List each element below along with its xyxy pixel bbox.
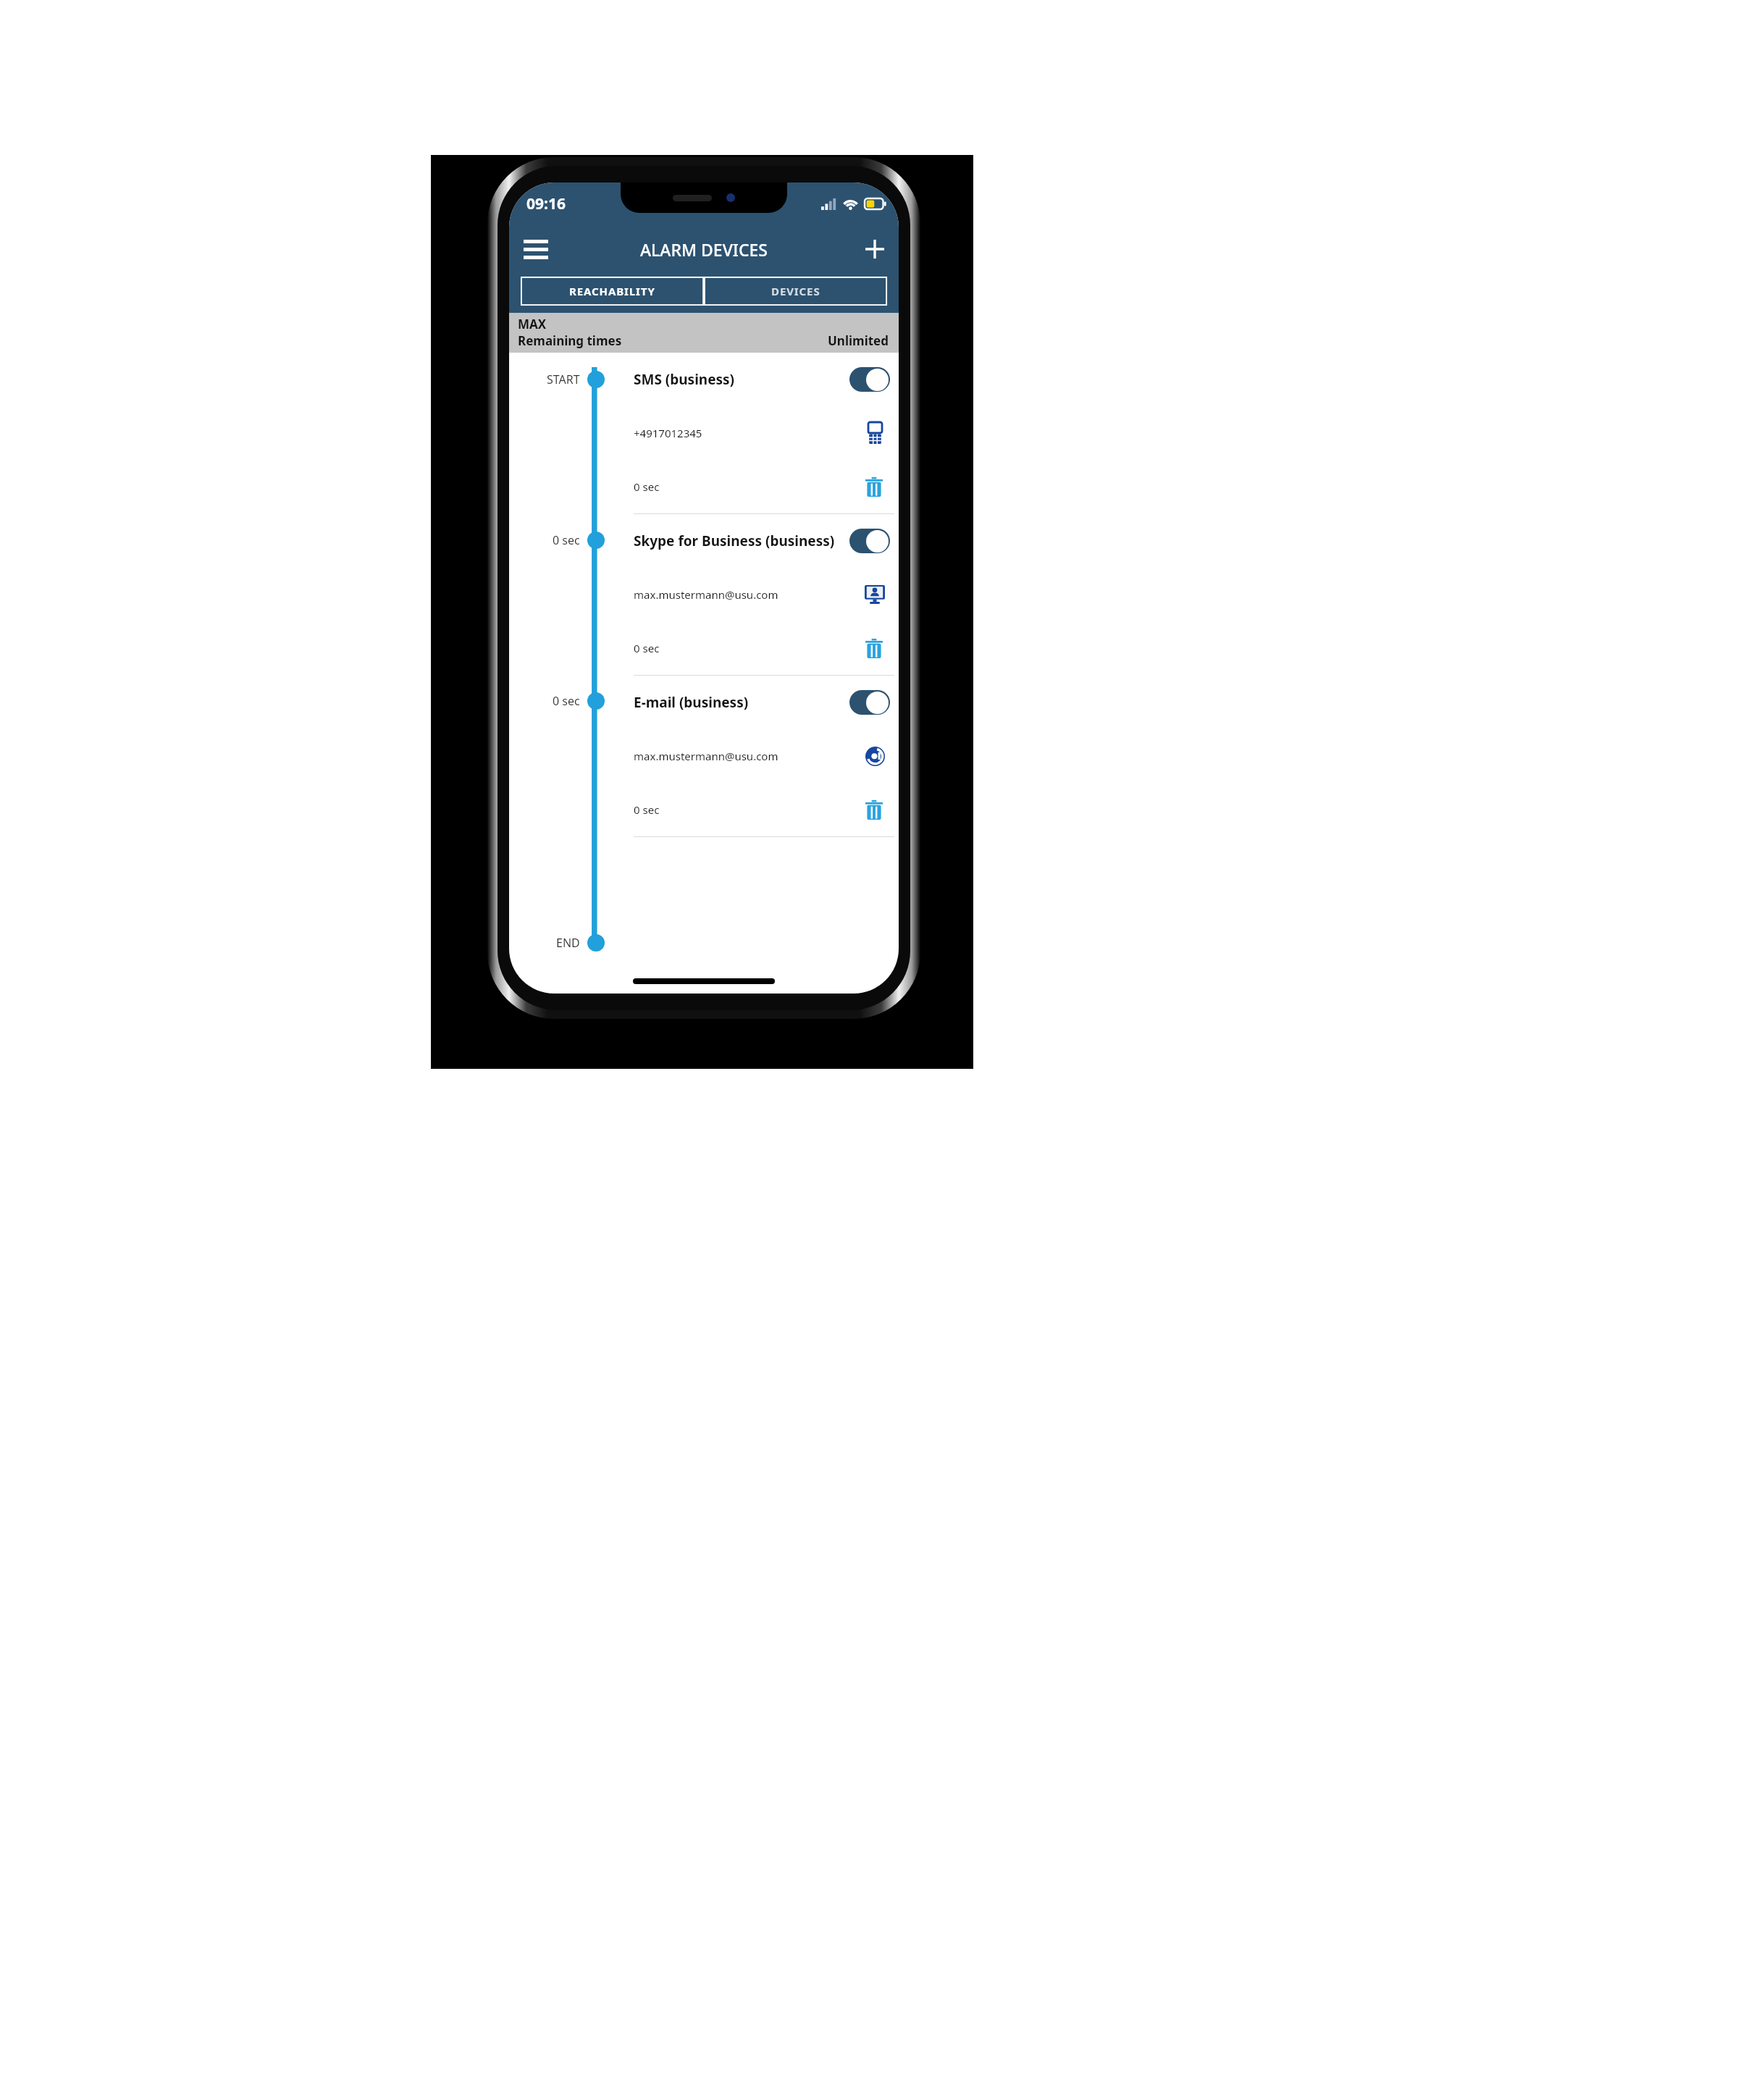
- button[interactable]: Delete: [858, 794, 890, 826]
- staticText: 0 sec: [634, 641, 858, 655]
- staticText: Unlimited: [828, 332, 889, 349]
- button[interactable]: Toggle device: [849, 529, 890, 553]
- button[interactable]: Toggle device: [849, 367, 890, 392]
- staticText: max.mustermann@usu.com: [634, 587, 860, 602]
- staticText: ALARM DEVICES: [640, 238, 768, 261]
- staticText: END: [556, 935, 580, 951]
- staticText: +4917012345: [634, 426, 860, 440]
- staticText: START: [547, 371, 580, 387]
- staticText: 0 sec: [634, 802, 858, 817]
- button[interactable]: Add: [858, 232, 891, 266]
- button[interactable]: Menu: [518, 231, 554, 267]
- button[interactable]: Delete: [858, 632, 890, 664]
- staticText: E-mail (business): [634, 693, 749, 712]
- staticText: 0 sec: [553, 532, 580, 548]
- staticText: MAX: [518, 316, 547, 332]
- staticText: Remaining times: [518, 332, 622, 349]
- button[interactable]: Delete: [858, 471, 890, 503]
- button[interactable]: E-mail (business): [509, 676, 899, 836]
- staticText: Skype for Business (business): [634, 532, 835, 550]
- button[interactable]: SMS (business): [509, 353, 899, 513]
- staticText: 0 sec: [553, 693, 580, 709]
- button[interactable]: DEVICES: [704, 277, 887, 306]
- staticText: SMS (business): [634, 370, 735, 389]
- button[interactable]: Toggle device: [849, 690, 890, 715]
- staticText: 0 sec: [634, 479, 858, 494]
- staticText: max.mustermann@usu.com: [634, 749, 860, 763]
- staticText: 09:16: [526, 193, 566, 214]
- staticText: REACHABILITY: [569, 284, 655, 298]
- button[interactable]: REACHABILITY: [521, 277, 704, 306]
- button[interactable]: Skype for Business (business): [509, 514, 899, 675]
- staticText: DEVICES: [771, 284, 820, 298]
